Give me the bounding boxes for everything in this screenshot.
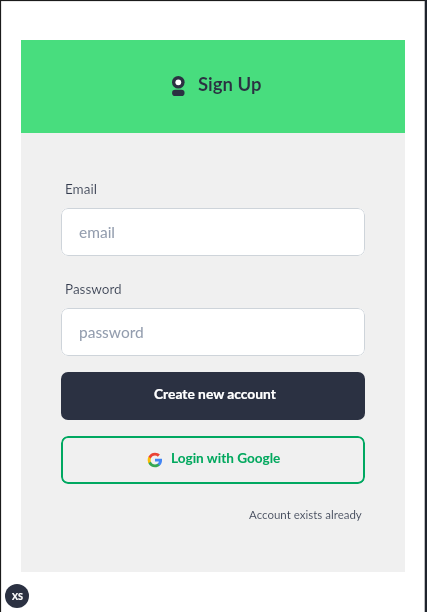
staticText: Create new account	[154, 385, 276, 402]
staticText: password	[79, 323, 144, 342]
staticText: XS	[12, 591, 23, 602]
staticText: Login with Google	[171, 450, 281, 466]
staticText: email	[79, 223, 116, 242]
staticText: Password	[65, 281, 122, 297]
button[interactable]: Login with Google	[61, 436, 365, 484]
button[interactable]: Create new account	[61, 372, 365, 420]
staticText: Email	[65, 181, 97, 197]
button[interactable]: email	[61, 208, 365, 256]
button[interactable]: Account exists already	[249, 508, 362, 522]
staticText: Sign Up	[198, 73, 262, 95]
button[interactable]: Size XS	[5, 584, 29, 608]
button[interactable]: password	[61, 308, 365, 356]
